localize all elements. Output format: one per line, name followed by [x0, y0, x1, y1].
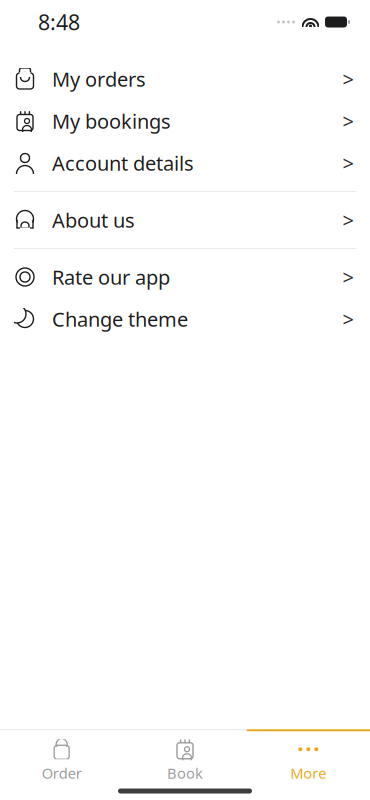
staticText: >	[342, 150, 353, 176]
staticText: Book	[167, 763, 203, 783]
staticText: >	[342, 264, 353, 290]
staticText: Rate our app	[52, 264, 170, 290]
button[interactable]: About us	[0, 199, 370, 241]
button[interactable]: Order	[0, 730, 123, 782]
button[interactable]: Account details	[0, 142, 370, 184]
button[interactable]: Change theme	[0, 298, 370, 340]
staticText: About us	[52, 207, 135, 233]
button[interactable]: More	[247, 730, 370, 782]
staticText: My orders	[52, 66, 146, 92]
staticText: My bookings	[52, 108, 171, 134]
button[interactable]: Book	[123, 730, 247, 782]
staticText: More	[290, 763, 326, 783]
staticText: Order	[42, 763, 82, 783]
staticText: >	[342, 108, 353, 134]
button[interactable]: Rate our app	[0, 256, 370, 298]
staticText: 8:48	[38, 8, 80, 36]
staticText: Account details	[52, 150, 194, 176]
staticText: >	[342, 66, 353, 92]
staticText: >	[342, 306, 353, 332]
button[interactable]: My bookings	[0, 100, 370, 142]
staticText: >	[342, 207, 353, 233]
button[interactable]: My orders	[0, 58, 370, 100]
staticText: Change theme	[52, 306, 188, 332]
